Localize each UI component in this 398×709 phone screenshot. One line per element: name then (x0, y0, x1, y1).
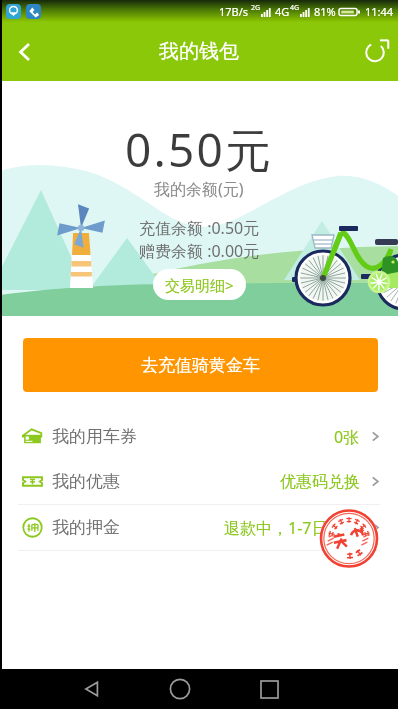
staticText: 充值余额 :0.50元 (139, 217, 260, 239)
staticText: 0张 (334, 426, 360, 448)
staticText: 0.50元 (125, 118, 274, 181)
button[interactable]: Home (160, 669, 200, 709)
staticText: 退款中，1-7日到账 (224, 517, 360, 539)
staticText: 我的钱包 (159, 39, 239, 64)
staticText: 我的用车券 (52, 426, 137, 447)
button[interactable]: 我的用车券 (0, 414, 398, 459)
staticText: 81% (314, 4, 336, 19)
button[interactable]: 去充值骑黄金车 (23, 338, 378, 392)
staticText: 11:44 (365, 4, 394, 19)
button[interactable]: 交易明细> (153, 269, 246, 300)
staticText: 4G (275, 4, 290, 19)
staticText: 我的余额(元) (154, 178, 244, 200)
button[interactable]: Recent apps (249, 669, 289, 709)
staticText: 4G (290, 3, 300, 13)
staticText: 我的押金 (52, 517, 120, 538)
staticText: 2G (251, 3, 261, 13)
staticText: 赠费余额 :0.00元 (139, 240, 260, 262)
button[interactable]: Refresh (352, 22, 398, 81)
button[interactable]: Back (0, 22, 50, 81)
staticText: 我的优惠 (52, 471, 120, 492)
staticText: 交易明细> (165, 275, 234, 295)
staticText: 去充值骑黄金车 (141, 355, 260, 376)
button[interactable]: 我的优惠 (0, 459, 398, 504)
button[interactable]: Back (72, 669, 112, 709)
button[interactable]: 我的押金 (0, 505, 398, 550)
staticText: 优惠码兑换 (280, 472, 360, 492)
staticText: 17B/s (219, 4, 249, 19)
